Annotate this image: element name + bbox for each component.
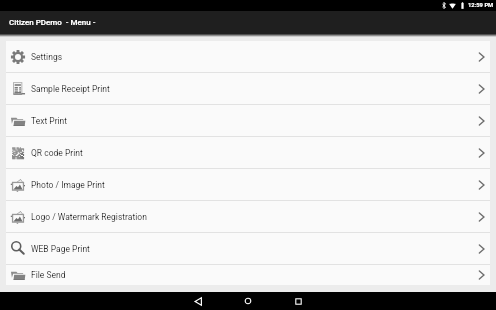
button[interactable]: File Send xyxy=(6,265,490,285)
staticText: Text Print xyxy=(31,116,68,126)
staticText: Citizen PDemo - Menu - xyxy=(9,18,96,27)
staticText: WEB Page Print xyxy=(31,244,90,254)
staticText: Photo / Image Print xyxy=(31,180,105,190)
button[interactable]: Back xyxy=(173,292,223,310)
staticText: File Send xyxy=(31,270,66,280)
staticText: QR code Print xyxy=(31,148,83,158)
staticText: 12:59 PM xyxy=(468,2,494,9)
button[interactable]: Text Print xyxy=(6,105,490,136)
button[interactable]: Home xyxy=(223,292,273,310)
button[interactable]: Photo / Image Print xyxy=(6,169,490,200)
button[interactable]: Logo / Watermark Registration xyxy=(6,201,490,232)
button[interactable]: Recents xyxy=(273,292,323,310)
button[interactable]: Sample Receipt Print xyxy=(6,73,490,104)
button[interactable]: WEB Page Print xyxy=(6,233,490,264)
button[interactable]: Settings xyxy=(6,41,490,72)
button[interactable]: QR code Print xyxy=(6,137,490,168)
staticText: Logo / Watermark Registration xyxy=(31,212,147,222)
staticText: Settings xyxy=(31,52,63,62)
staticText: Sample Receipt Print xyxy=(31,84,110,94)
